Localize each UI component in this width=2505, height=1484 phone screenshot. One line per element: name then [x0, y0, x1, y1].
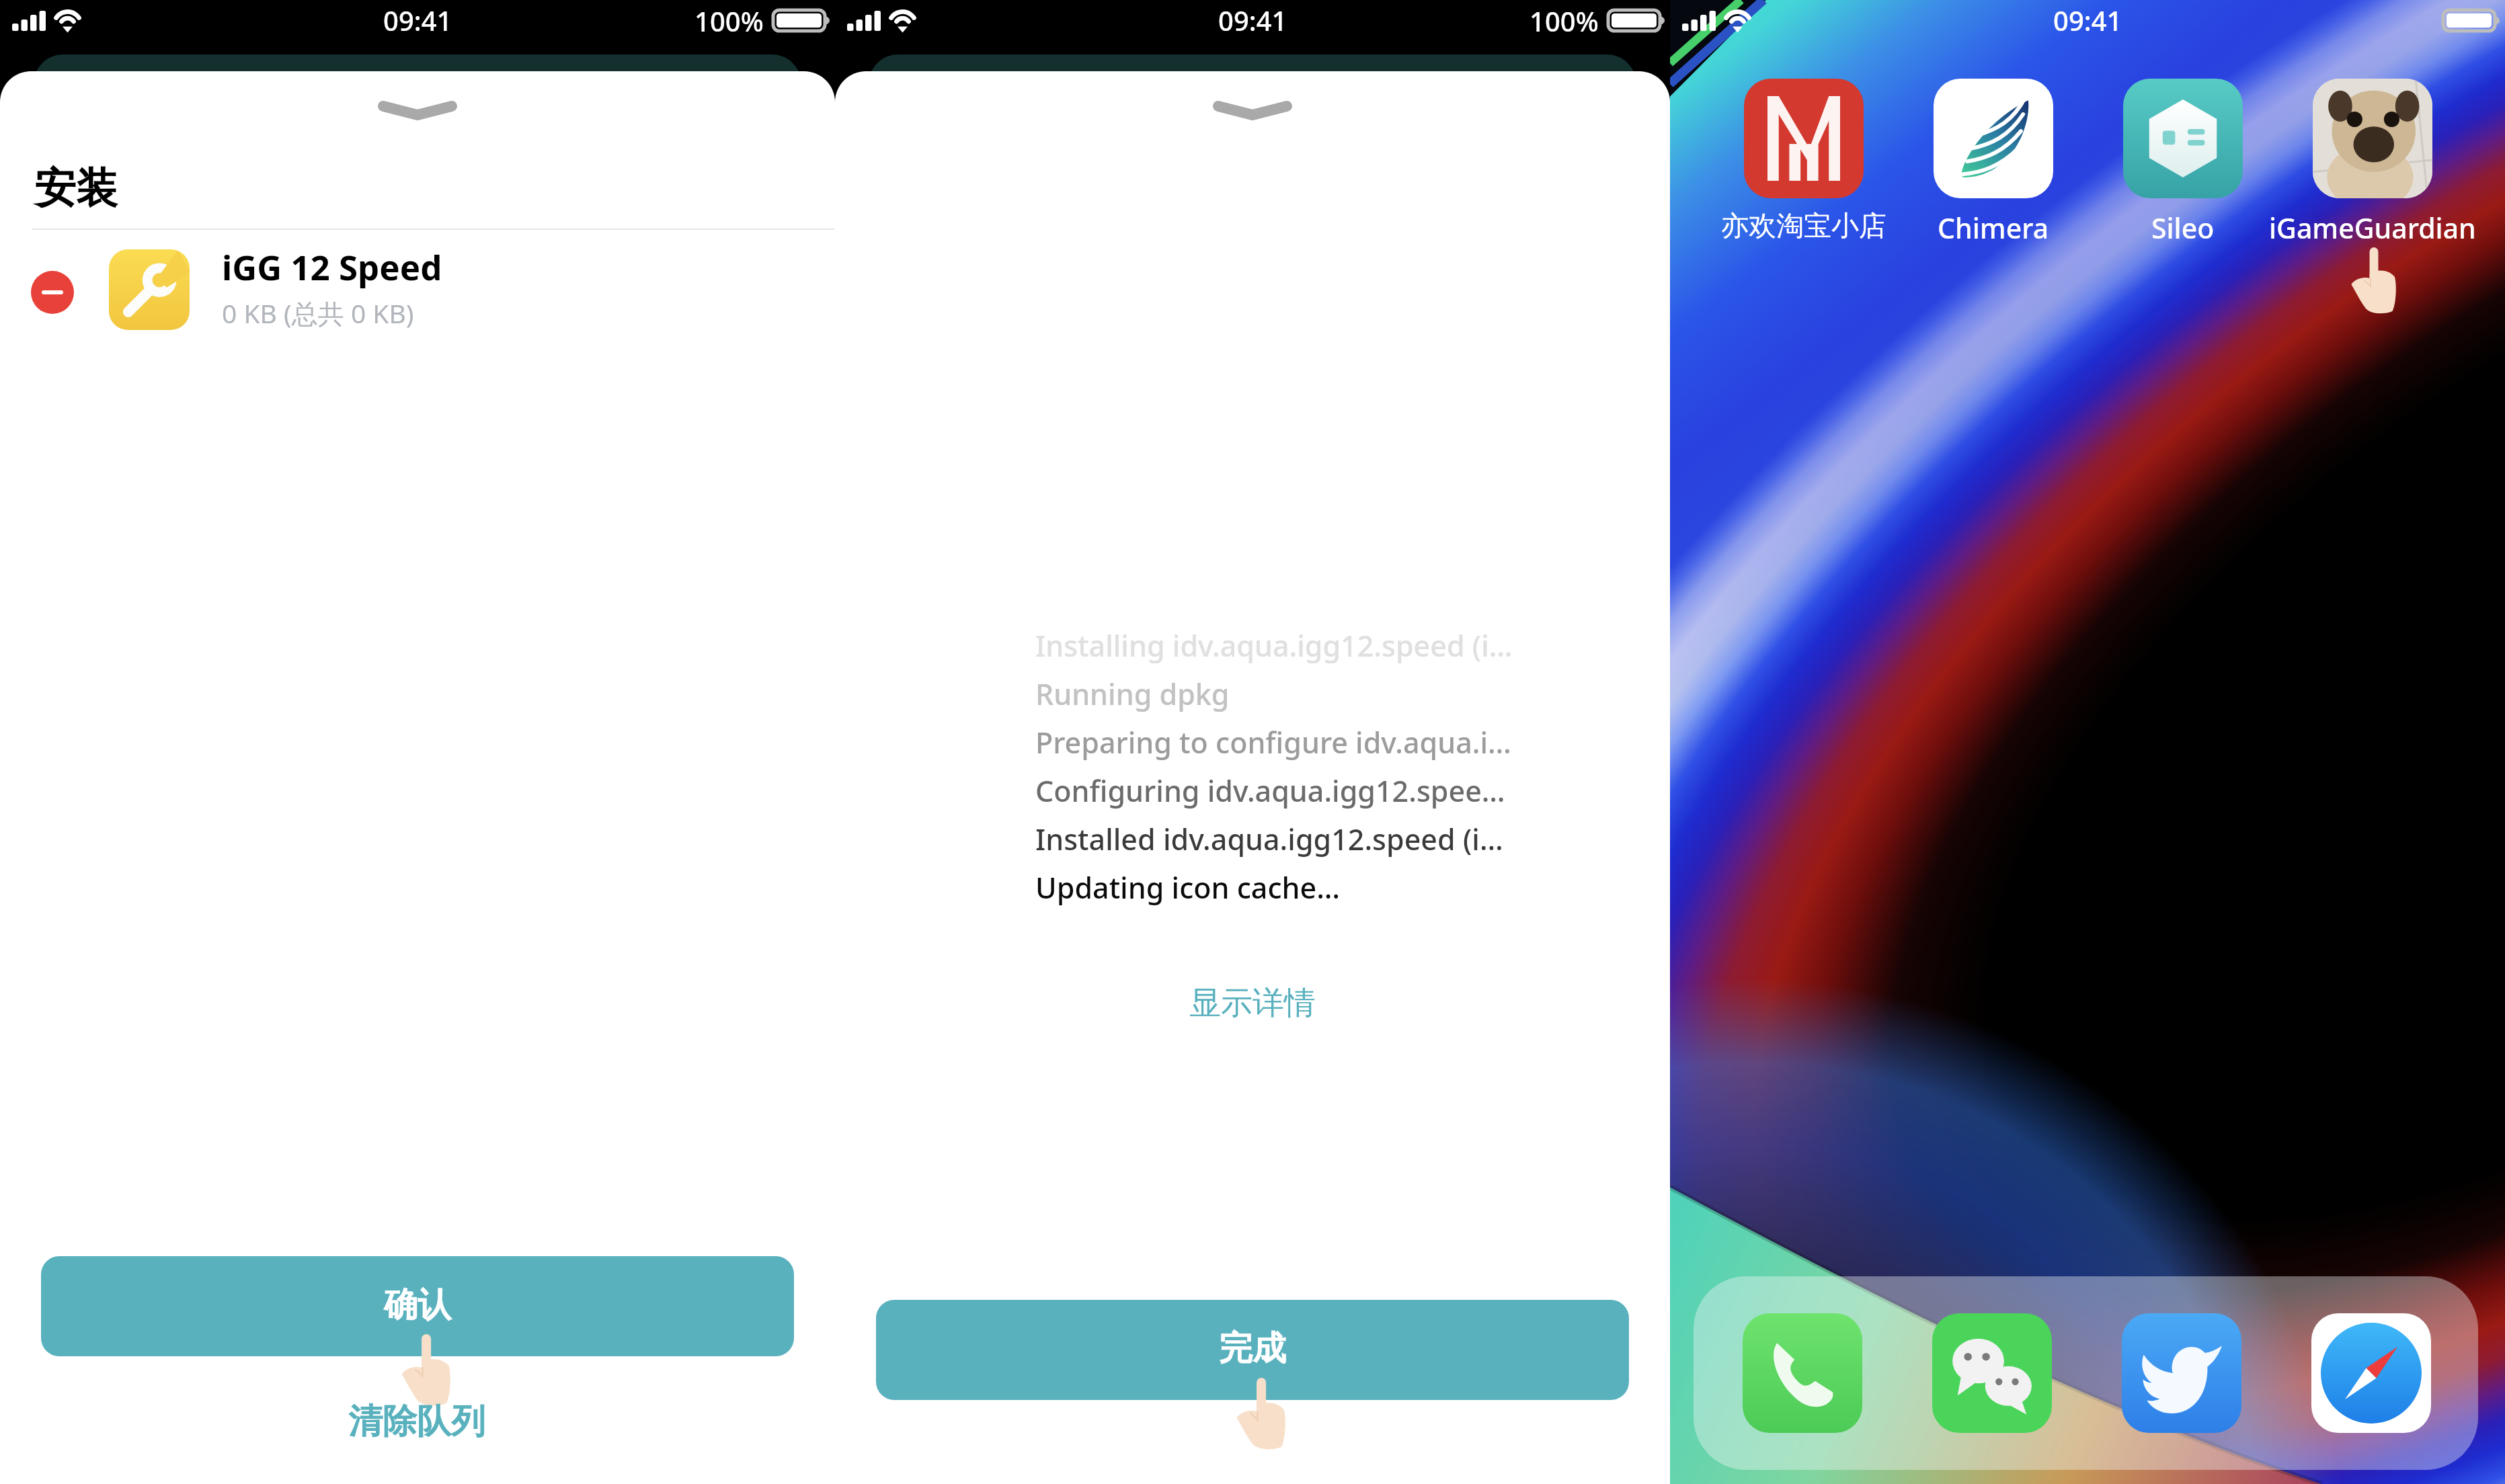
button[interactable] — [1934, 79, 2053, 198]
staticText: 100% — [694, 3, 764, 39]
button[interactable]: 清除队列 — [348, 1400, 485, 1443]
staticText: Updating icon cache… — [1035, 868, 1340, 907]
button[interactable] — [1744, 79, 1864, 198]
button[interactable]: 显示详情 — [1189, 983, 1316, 1023]
staticText: Preparing to configure idv.aqua.i… — [1035, 723, 1511, 762]
button[interactable]: Collapse sheet — [0, 87, 835, 134]
staticText: 0 KB (总共 0 KB) — [222, 295, 414, 331]
staticText: Installed idv.aqua.igg12.speed (i… — [1035, 819, 1503, 859]
button[interactable] — [2313, 79, 2432, 198]
staticText: Sileo — [2151, 209, 2215, 247]
staticText: 100% — [1529, 3, 1599, 39]
staticText: Chimera — [1938, 209, 2049, 247]
staticText: iGG 12 Speed — [222, 243, 442, 290]
staticText: 亦欢淘宝小店 — [1721, 209, 1886, 244]
staticText: 09:41 — [383, 2, 452, 38]
button[interactable]: Twitter — [2122, 1313, 2241, 1433]
button[interactable]: Collapse sheet — [835, 87, 1670, 134]
button[interactable]: Safari — [2311, 1313, 2431, 1433]
staticText: 09:41 — [2053, 2, 2122, 38]
staticText: iGameGuardian — [2269, 209, 2476, 247]
staticText: Installing idv.aqua.igg12.speed (i… — [1035, 626, 1513, 665]
staticText: 安装 — [34, 162, 118, 214]
button[interactable]: WeChat — [1932, 1313, 2052, 1433]
staticText: Configuring idv.aqua.igg12.spee… — [1035, 771, 1505, 811]
staticText: 09:41 — [1218, 2, 1287, 38]
button[interactable]: 确认 — [41, 1256, 794, 1356]
button[interactable]: 完成 — [876, 1300, 1629, 1400]
staticText: 清除队列 — [348, 1400, 485, 1443]
staticText: Running dpkg — [1035, 674, 1230, 714]
staticText: 完成 — [1219, 1327, 1286, 1370]
button[interactable]: Remove from queue — [0, 230, 835, 358]
button[interactable]: Remove from queue — [31, 271, 74, 314]
button[interactable] — [2123, 79, 2243, 198]
button[interactable]: Phone — [1743, 1313, 1862, 1433]
staticText: 确认 — [384, 1284, 451, 1326]
staticText: 显示详情 — [1189, 983, 1316, 1023]
